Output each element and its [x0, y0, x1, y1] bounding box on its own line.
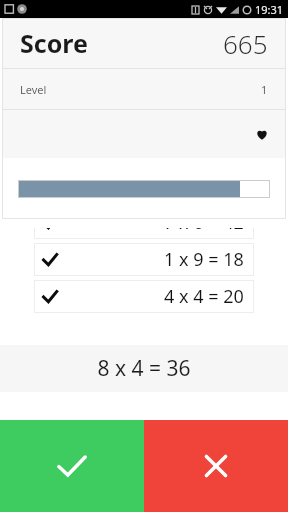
button[interactable]: 4 x 4 = 20 — [34, 280, 254, 313]
staticText: 4 x 4 = 20 — [164, 284, 244, 309]
staticText: 19:31 — [255, 2, 284, 17]
staticText: 1 — [261, 82, 268, 97]
button[interactable]: Score — [2, 18, 286, 68]
other: Life remaining — [256, 128, 268, 140]
button[interactable]: 7 x 6 = 42 — [34, 228, 254, 239]
button[interactable]: 1 x 9 = 18 — [34, 243, 254, 276]
staticText: 665 — [223, 26, 268, 61]
staticText: 1 x 9 = 18 — [164, 247, 244, 272]
staticText: 8 x 4 = 36 — [97, 354, 191, 383]
button[interactable]: 8 x 4 = 36 — [0, 345, 288, 392]
button[interactable]: Wrong — [144, 420, 288, 512]
staticText: Score — [20, 26, 88, 60]
staticText: 7 x 6 = 42 — [164, 228, 244, 235]
staticText: Level — [20, 82, 47, 97]
button[interactable]: Correct — [0, 420, 144, 512]
button[interactable]: Life remaining — [2, 110, 286, 158]
button[interactable]: Level — [2, 69, 286, 109]
